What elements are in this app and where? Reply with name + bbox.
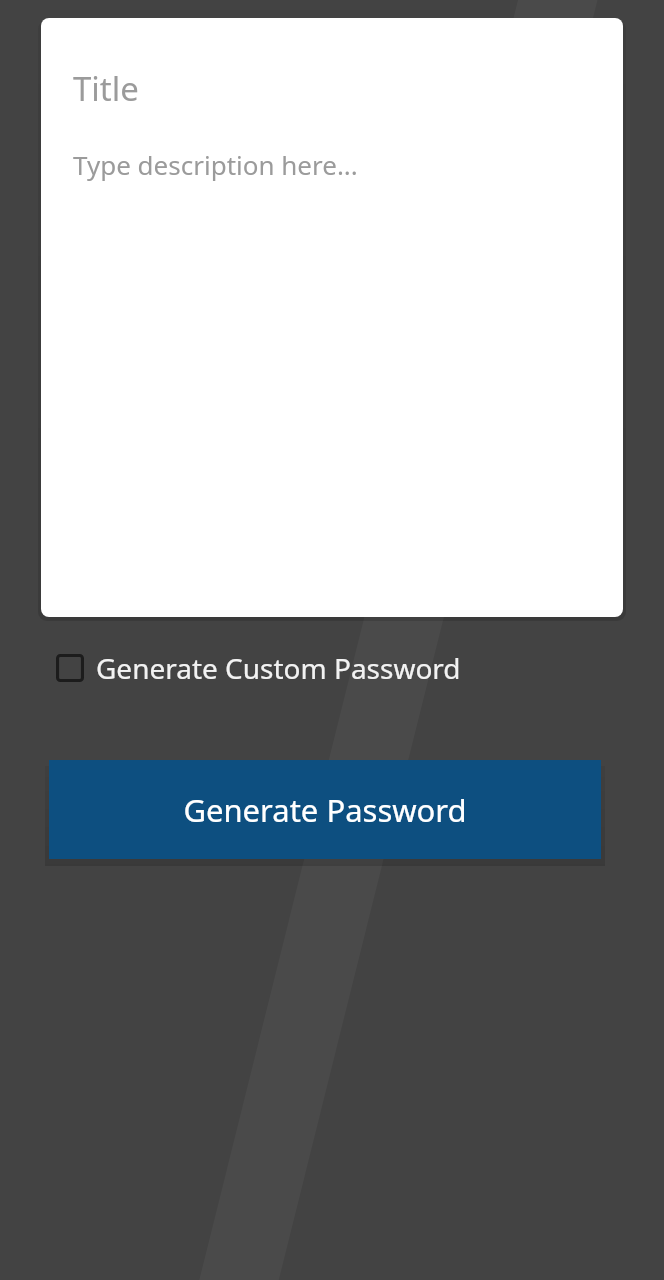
other: Generate Custom Password checkbox (56, 654, 84, 682)
button[interactable]: Type description here... (41, 145, 623, 184)
button[interactable]: Generate Custom Password checkbox (46, 643, 471, 693)
staticText: Generate Custom Password (96, 649, 461, 687)
button[interactable]: Generate Password (49, 760, 601, 859)
button[interactable]: Title (41, 18, 623, 617)
staticText: Type description here... (73, 147, 358, 182)
staticText: Title (73, 66, 139, 111)
button[interactable]: Title (41, 62, 623, 115)
staticText: Generate Password (183, 789, 467, 831)
